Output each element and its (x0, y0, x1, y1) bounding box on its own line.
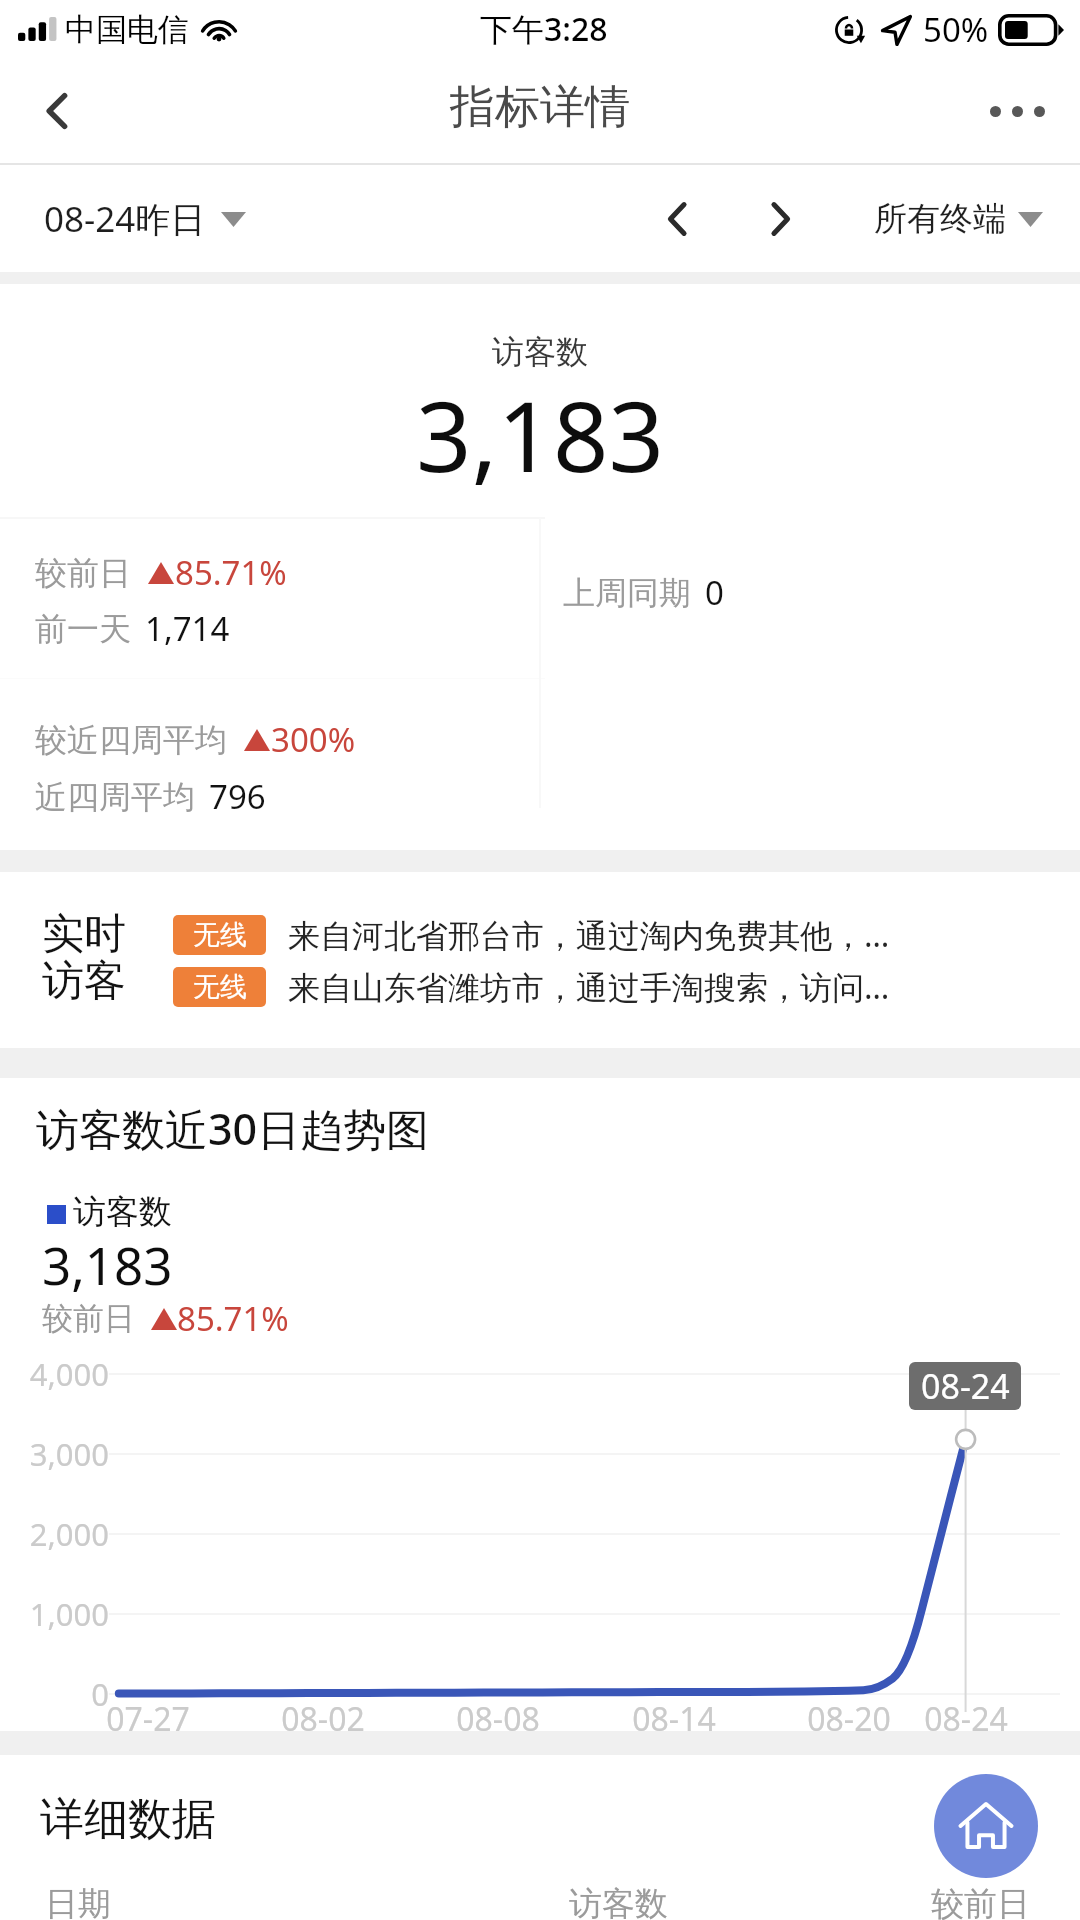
staticText: 无线 (193, 918, 247, 952)
staticText: 08-08 (438, 1697, 558, 1741)
staticText: 3,183 (0, 368, 1080, 500)
button[interactable]: More options (955, 58, 1080, 164)
staticText: 访客数 (0, 332, 1080, 372)
staticText: 实时 (42, 908, 126, 961)
staticText: 2,000 (0, 1513, 109, 1555)
button[interactable]: Back (0, 58, 115, 164)
staticText: 指标详情 (450, 79, 630, 136)
staticText: 来自山东省潍坊市，通过手淘搜索，访问… (288, 965, 890, 1009)
staticText: 3,183 (42, 1230, 173, 1299)
staticText: 日期 (45, 1883, 111, 1920)
staticText: 08-24 (906, 1697, 1026, 1741)
staticText: 0 (0, 1673, 109, 1715)
button[interactable]: Previous day (628, 169, 728, 269)
button[interactable]: 所有终端 (858, 182, 1059, 256)
staticText: 所有终端 (874, 198, 1006, 240)
staticText: 上周同期 (563, 573, 691, 613)
staticText: 07-27 (88, 1697, 208, 1741)
staticText: 较前日 (35, 553, 131, 593)
staticText: 中国电信 (65, 10, 189, 49)
staticText: 1,714 (145, 606, 230, 651)
staticText: 近四周平均 (35, 777, 195, 817)
staticText: 1,000 (0, 1593, 109, 1635)
staticText: 08-14 (614, 1697, 734, 1741)
staticText: 前一天 (35, 609, 131, 649)
staticText: 85.71% (177, 1296, 289, 1341)
staticText: 访客数 (73, 1191, 172, 1233)
staticText: 详细数据 (40, 1792, 216, 1847)
staticText: 访客数 (569, 1883, 668, 1920)
staticText: 较近四周平均 (35, 720, 227, 760)
staticText: 08-24 (921, 1363, 1010, 1409)
button[interactable]: 08-24昨日 (28, 179, 262, 259)
staticText: 50% (923, 7, 989, 52)
staticText: 08-02 (263, 1697, 383, 1741)
staticText: 无线 (193, 970, 247, 1004)
staticText: 访客数近30日趋势图 (36, 1099, 430, 1158)
staticText: 3,000 (0, 1433, 109, 1475)
staticText: 访客 (42, 955, 126, 1008)
staticText: 0 (705, 570, 724, 615)
staticText: 较前日 (931, 1883, 1030, 1920)
staticText: 4,000 (0, 1353, 109, 1395)
button[interactable]: 实时 (0, 872, 1080, 1048)
staticText: 下午3:28 (480, 7, 608, 51)
staticText: 来自河北省邢台市，通过淘内免费其他，… (288, 913, 890, 957)
staticText: 300% (271, 717, 356, 762)
staticText: 85.71% (175, 550, 287, 595)
staticText: 08-20 (789, 1697, 909, 1741)
button[interactable]: Home (934, 1774, 1038, 1878)
staticText: 08-24昨日 (44, 195, 206, 243)
staticText: 较前日 (42, 1299, 135, 1338)
staticText: 796 (209, 774, 266, 819)
button[interactable]: Next day (730, 169, 830, 269)
